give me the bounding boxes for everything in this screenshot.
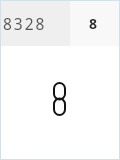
staticText: 8 xyxy=(89,14,100,33)
other: Value 8 xyxy=(0,46,120,160)
button[interactable]: Step 8 xyxy=(70,0,120,46)
button[interactable]: 8328 xyxy=(0,0,70,46)
staticText: 8328 xyxy=(3,13,47,34)
